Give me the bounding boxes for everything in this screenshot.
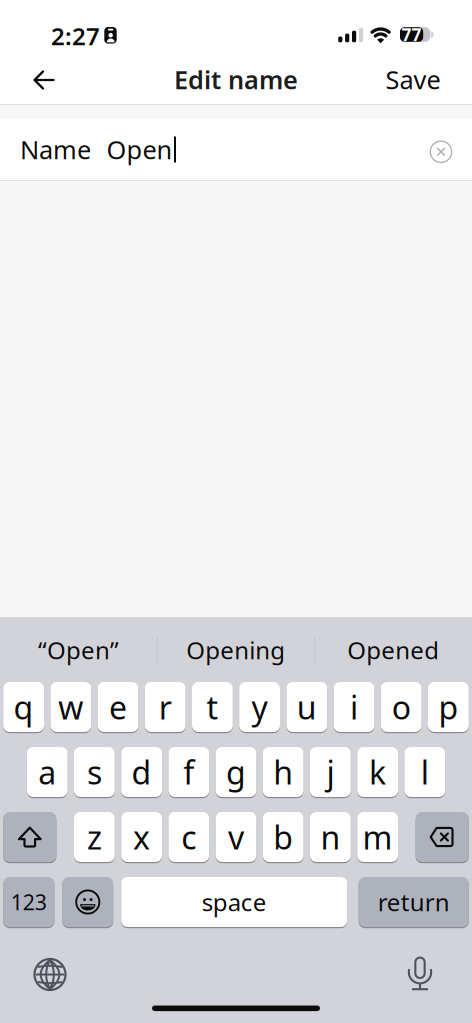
staticText: Edit name <box>174 63 298 96</box>
button[interactable]: p <box>428 682 469 732</box>
staticText: i <box>350 686 358 728</box>
button[interactable]: “Open” <box>0 618 157 682</box>
button[interactable]: n <box>310 812 351 862</box>
staticText: Opened <box>347 634 439 666</box>
button[interactable]: i <box>334 682 374 732</box>
staticText: Opening <box>186 634 285 666</box>
button[interactable]: f <box>168 747 209 797</box>
staticText: n <box>320 816 340 858</box>
button[interactable]: y <box>239 682 280 732</box>
button[interactable]: q <box>3 682 44 732</box>
button[interactable]: Delete <box>416 812 469 862</box>
button[interactable]: l <box>404 747 445 797</box>
button[interactable]: Emoji <box>62 877 113 927</box>
staticText: space <box>202 886 267 918</box>
staticText: h <box>273 751 293 793</box>
button[interactable]: Opened <box>314 618 472 682</box>
staticText: q <box>14 686 34 728</box>
button[interactable]: Clear text <box>430 141 452 162</box>
staticText: j <box>326 751 334 793</box>
staticText: return <box>378 886 450 918</box>
button[interactable]: Name text field <box>0 119 472 180</box>
staticText: g <box>226 751 246 793</box>
staticText: s <box>87 751 102 793</box>
button[interactable]: Numbers <box>3 877 54 927</box>
staticText: a <box>38 751 56 793</box>
staticText: t <box>206 686 218 728</box>
button[interactable]: d <box>121 747 162 797</box>
staticText: 2:27 <box>51 20 100 52</box>
staticText: m <box>363 816 393 858</box>
button[interactable]: u <box>286 682 327 732</box>
button[interactable]: s <box>74 747 115 797</box>
staticText: x <box>133 816 150 858</box>
button[interactable]: Next keyboard <box>34 959 65 990</box>
staticText: o <box>392 686 411 728</box>
staticText: Name <box>20 133 91 166</box>
staticText: u <box>297 686 317 728</box>
staticText: w <box>58 686 83 728</box>
staticText: p <box>438 686 458 728</box>
button[interactable]: a <box>27 747 68 797</box>
button[interactable]: t <box>192 682 233 732</box>
staticText: c <box>181 816 196 858</box>
button[interactable]: w <box>50 682 91 732</box>
button[interactable]: space <box>121 877 347 927</box>
staticText: k <box>369 751 386 793</box>
staticText: z <box>87 816 102 858</box>
staticText: “Open” <box>38 634 119 666</box>
button[interactable]: j <box>310 747 351 797</box>
staticText: v <box>228 816 244 858</box>
button[interactable]: Dictate <box>407 957 433 990</box>
button[interactable]: k <box>357 747 398 797</box>
staticText: Open <box>106 133 172 166</box>
staticText: l <box>421 751 429 793</box>
button[interactable]: e <box>98 682 138 732</box>
button[interactable]: z <box>74 812 115 862</box>
button[interactable]: h <box>263 747 304 797</box>
button[interactable]: return <box>359 877 469 927</box>
button[interactable]: v <box>216 812 256 862</box>
button[interactable]: Back <box>33 71 54 89</box>
button[interactable]: Shift <box>3 812 56 862</box>
staticText: f <box>183 751 194 793</box>
button[interactable]: m <box>357 812 398 862</box>
staticText: b <box>273 816 293 858</box>
button[interactable]: Opening <box>157 618 314 682</box>
button[interactable]: b <box>263 812 304 862</box>
staticText: y <box>252 686 268 728</box>
staticText: r <box>159 686 172 728</box>
staticText: e <box>109 686 127 728</box>
staticText: d <box>132 751 152 793</box>
staticText: 123 <box>11 888 47 916</box>
button[interactable]: o <box>381 682 422 732</box>
button[interactable]: x <box>121 812 162 862</box>
button[interactable]: Save <box>0 63 472 96</box>
staticText: Save <box>385 63 440 96</box>
staticText: 77 <box>401 23 421 46</box>
button[interactable]: r <box>145 682 186 732</box>
button[interactable]: c <box>168 812 209 862</box>
button[interactable]: g <box>216 747 256 797</box>
